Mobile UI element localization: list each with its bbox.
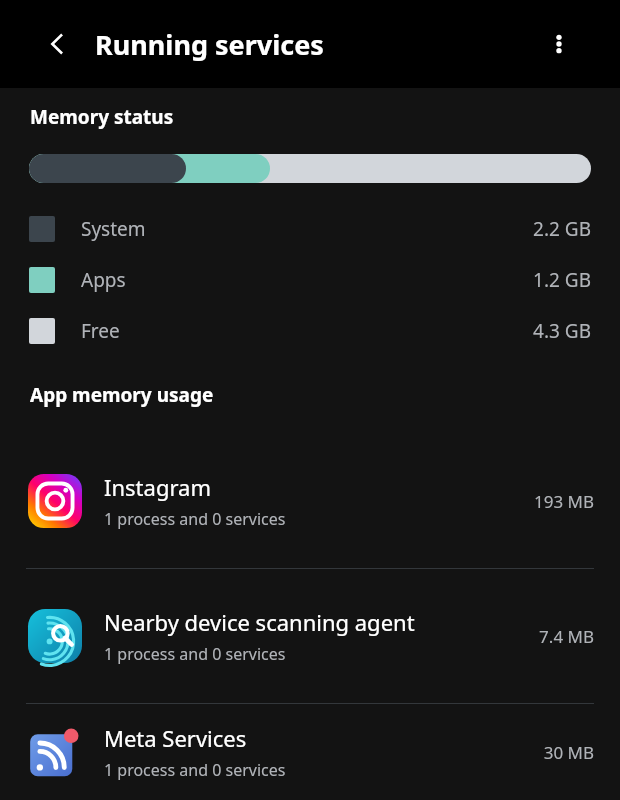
button[interactable]: Free <box>0 305 620 356</box>
staticText: Nearby device scanning agent <box>104 607 415 637</box>
staticText: 1 process and 0 services <box>104 643 286 665</box>
staticText: App memory usage <box>30 382 214 408</box>
staticText: 30 MB <box>543 741 594 764</box>
staticText: 193 MB <box>533 490 594 513</box>
button[interactable]: Instagram <box>0 434 620 568</box>
staticText: Free <box>81 318 533 344</box>
staticText: 1 process and 0 services <box>104 508 286 530</box>
staticText: Meta Services <box>104 723 247 753</box>
staticText: Running services <box>95 26 324 63</box>
staticText: Apps <box>81 267 533 293</box>
staticText: 1.2 GB <box>533 267 591 293</box>
button[interactable]: Nearby device scanning agent <box>0 569 620 703</box>
button[interactable]: System <box>0 203 620 254</box>
staticText: 2.2 GB <box>533 216 591 242</box>
button[interactable]: More options <box>536 21 582 67</box>
staticText: 1 process and 0 services <box>104 759 286 781</box>
staticText: System <box>81 216 533 242</box>
staticText: 7.4 MB <box>539 625 594 648</box>
button[interactable]: Meta Services <box>0 704 620 800</box>
button[interactable]: Back <box>34 21 80 67</box>
staticText: Memory status <box>30 104 174 130</box>
button[interactable]: Apps <box>0 254 620 305</box>
staticText: Instagram <box>104 472 211 502</box>
staticText: 4.3 GB <box>533 318 591 344</box>
